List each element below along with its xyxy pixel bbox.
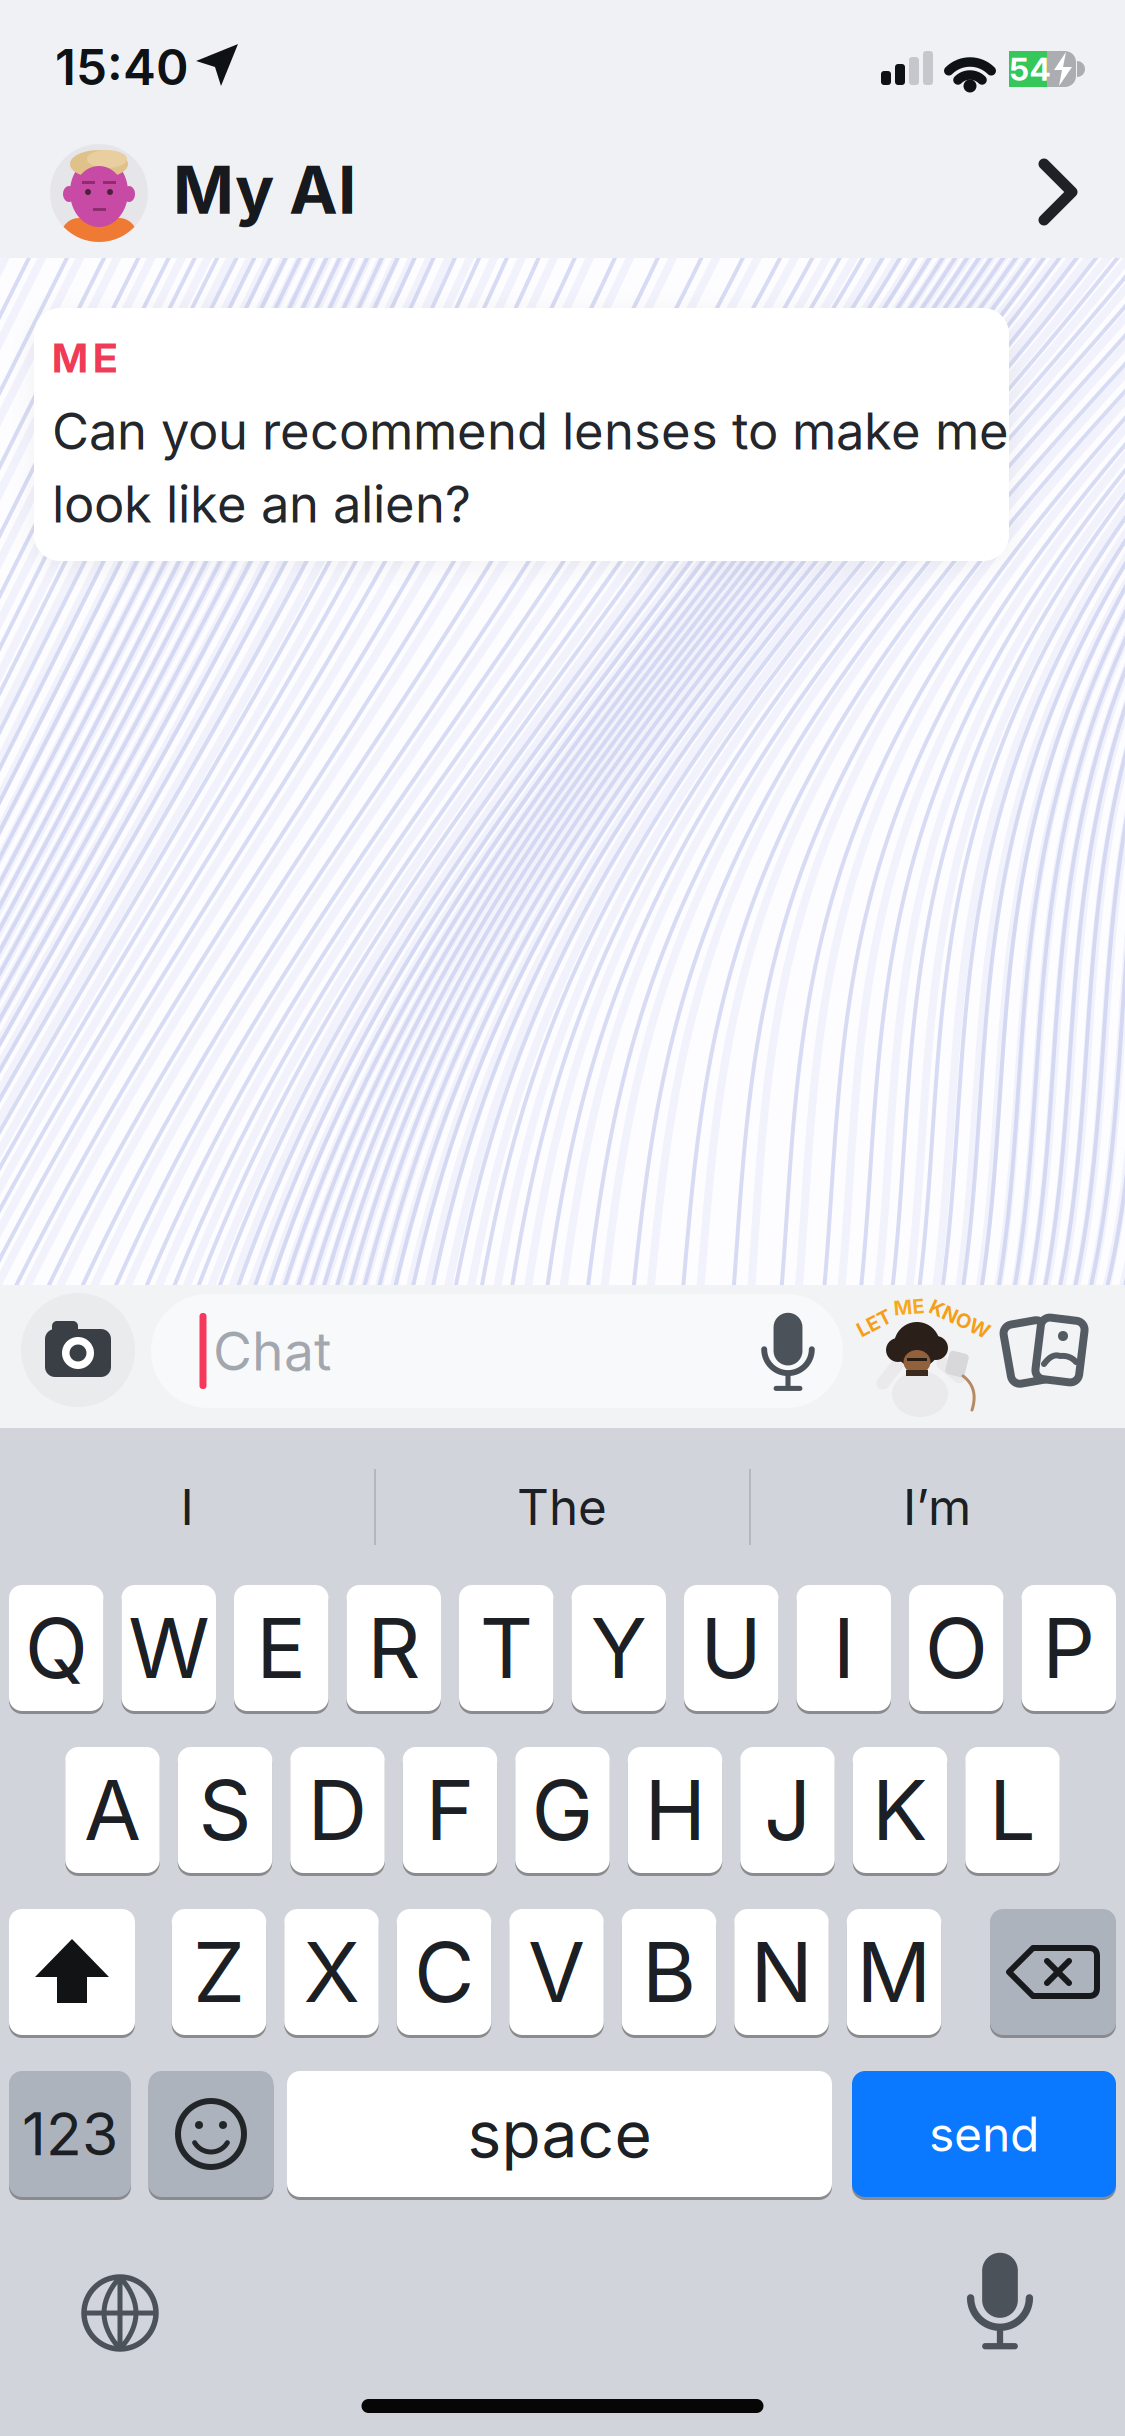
staticText: 54 [1009,50,1050,88]
button[interactable]: Open conversation details [1026,154,1090,230]
staticText: L [989,1761,1036,1859]
button[interactable]: space [287,2069,832,2198]
button[interactable]: Shift [9,1907,135,2036]
button[interactable]: G [515,1745,610,1874]
button[interactable]: I [2,1447,372,1567]
staticText: C [414,1923,474,2021]
staticText: T [480,1599,533,1697]
button[interactable]: Y [571,1583,666,1712]
button[interactable]: S [178,1745,272,1874]
staticText: 15:40 [55,38,189,96]
button[interactable]: A [65,1745,160,1874]
staticText: W [128,1599,209,1697]
staticText: B [642,1923,696,2021]
staticText: The [517,1478,607,1536]
staticText: ME [893,1295,924,1319]
staticText: U [700,1599,762,1697]
staticText: S [198,1761,251,1859]
staticText: KNOW [927,1307,992,1331]
button[interactable]: M [847,1907,941,2036]
button[interactable]: K [853,1745,947,1874]
button[interactable]: R [346,1583,441,1712]
staticText: Z [193,1923,245,2021]
button[interactable]: N [734,1907,829,2036]
staticText: send [929,2106,1039,2162]
button[interactable]: E [234,1583,328,1712]
staticText: K [872,1761,928,1859]
staticText: I [833,1599,855,1697]
button[interactable]: Camera [21,1293,135,1407]
staticText: J [764,1761,811,1859]
staticText: ME [52,334,117,382]
button[interactable]: W [121,1583,216,1712]
button[interactable]: I [796,1583,891,1712]
staticText: G [531,1761,593,1859]
button[interactable]: Dictate [947,2247,1052,2352]
staticText: I’m [903,1478,971,1536]
button[interactable]: Emoji [148,2069,273,2198]
staticText: Chat [213,1319,331,1382]
staticText: LET [856,1311,892,1335]
button[interactable]: J [740,1745,835,1874]
button[interactable]: Z [172,1907,266,2036]
button[interactable]: U [684,1583,778,1712]
button[interactable]: Next keyboard [80,2273,160,2353]
staticText: O [925,1599,988,1697]
staticText: P [1042,1599,1095,1697]
staticText: space [467,2096,651,2172]
button[interactable]: X [284,1907,379,2036]
staticText: Y [591,1599,647,1697]
staticText: R [367,1599,420,1697]
button[interactable]: P [1021,1583,1116,1712]
button[interactable]: My AI sticker [860,1290,990,1414]
button[interactable]: Stickers [994,1300,1104,1400]
button[interactable]: My AI profile [50,144,148,242]
staticText: X [303,1923,359,2021]
staticText: F [425,1761,474,1859]
button[interactable]: Delete [990,1907,1116,2036]
button[interactable]: Chat [151,1294,843,1408]
staticText: 123 [22,2099,118,2169]
staticText: M [856,1923,931,2021]
button[interactable]: I’m [752,1447,1122,1567]
button[interactable]: L [965,1745,1060,1874]
staticText: I [180,1478,193,1536]
staticText: Q [25,1599,88,1697]
button[interactable]: C [397,1907,491,2036]
staticText: look like an alien? [52,474,471,534]
button[interactable]: Q [9,1583,103,1712]
staticText: H [644,1761,705,1859]
button[interactable]: The [377,1447,747,1567]
button[interactable]: D [290,1745,385,1874]
button[interactable]: H [628,1745,722,1874]
staticText: A [84,1761,141,1859]
staticText: V [528,1923,585,2021]
staticText: E [256,1599,306,1697]
staticText: Can you recommend lenses to make me [52,401,1009,461]
button[interactable]: V [509,1907,604,2036]
button[interactable]: F [403,1745,497,1874]
staticText: D [307,1761,367,1859]
button[interactable]: T [459,1583,553,1712]
staticText: My AI [173,151,356,229]
button[interactable]: 123 [9,2069,131,2198]
button[interactable]: O [909,1583,1003,1712]
button[interactable]: send [852,2069,1116,2198]
staticText: N [750,1923,812,2021]
button[interactable]: B [622,1907,716,2036]
